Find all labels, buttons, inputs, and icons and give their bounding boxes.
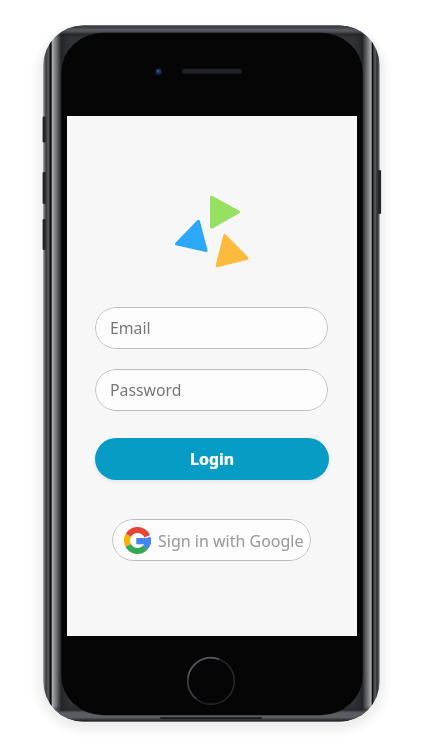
button[interactable]: Login [95,438,329,480]
button[interactable]: Email [95,307,328,349]
button[interactable]: Sign in with Google [112,519,311,561]
staticText: Sign in with Google [158,530,304,552]
staticText: Email [110,317,151,339]
staticText: Password [110,379,182,401]
staticText: Login [190,448,235,470]
button[interactable]: Password [95,369,328,411]
